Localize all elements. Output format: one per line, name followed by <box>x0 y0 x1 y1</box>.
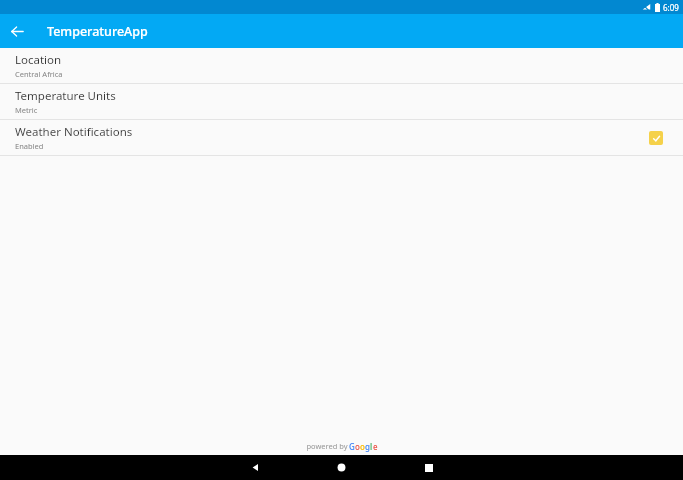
staticText: o <box>355 441 360 452</box>
button[interactable]: Recent apps <box>416 455 441 480</box>
staticText: powered by <box>305 441 349 451</box>
staticText: 6:09 <box>663 2 679 13</box>
staticText: g <box>365 441 370 452</box>
staticText: o <box>360 441 365 452</box>
button[interactable]: Weather notifications toggle <box>644 126 668 150</box>
button[interactable]: Navigate up <box>0 14 34 48</box>
button[interactable]: Home <box>329 455 354 480</box>
staticText: TemperatureApp <box>47 23 148 40</box>
button[interactable]: Location <box>0 48 683 83</box>
button[interactable]: Weather Notifications <box>0 120 683 155</box>
staticText: Temperature Units <box>15 88 116 104</box>
staticText: e <box>373 441 378 452</box>
staticText: Location <box>15 52 62 68</box>
staticText: G <box>349 441 355 452</box>
button[interactable]: Back <box>243 455 268 480</box>
button[interactable]: Temperature Units <box>0 84 683 119</box>
staticText: Weather Notifications <box>15 124 133 140</box>
staticText: Central Africa <box>15 69 63 79</box>
staticText: Metric <box>15 105 38 115</box>
staticText: Enabled <box>15 141 44 151</box>
staticText: l <box>370 441 373 452</box>
